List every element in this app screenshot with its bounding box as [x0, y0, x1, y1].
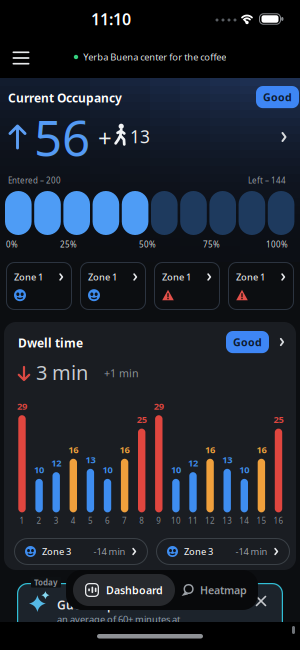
staticText: 10 [34, 463, 44, 476]
staticText: -14 min [93, 545, 125, 558]
staticText: 10 [171, 463, 181, 476]
staticText: Zone 1 [88, 271, 117, 283]
button[interactable]: Yerba Buena center for the coffee [74, 51, 226, 63]
staticText: Today [34, 577, 58, 588]
staticText: Good [233, 335, 262, 349]
staticText: 10 [239, 463, 249, 476]
staticText: Guests spend [57, 597, 138, 613]
staticText: Zone 3 [184, 545, 213, 558]
staticText: 13 [222, 515, 232, 526]
staticText: 10 [102, 463, 112, 476]
staticText: 10 [171, 515, 181, 526]
staticText: 16 [273, 515, 283, 526]
staticText: 6 [105, 515, 110, 526]
staticText: 0% [6, 239, 18, 250]
staticText: 15 [256, 515, 266, 526]
staticText: 14 [239, 515, 249, 526]
staticText: 5 [88, 515, 93, 526]
button[interactable]: Occupancy details [274, 127, 294, 147]
staticText: Good [263, 90, 292, 104]
staticText: 16 [68, 443, 78, 456]
staticText: Zone 1 [14, 271, 43, 283]
staticText: 100% [266, 239, 288, 250]
staticText: 29 [17, 400, 27, 412]
staticText: 9 [156, 515, 161, 526]
staticText: 13 [130, 125, 150, 148]
button[interactable]: Dwell time details [274, 334, 290, 350]
staticText: 12 [205, 515, 215, 526]
staticText: 8 [139, 515, 144, 526]
button[interactable]: Menu [7, 46, 35, 70]
staticText: 3 min [36, 359, 88, 386]
staticText: 13 [85, 453, 95, 466]
button[interactable]: Good [226, 331, 269, 353]
staticText: 12 [51, 457, 61, 469]
button[interactable]: Dashboard [73, 574, 175, 606]
button[interactable]: Dismiss [249, 589, 273, 613]
staticText: Zone 1 [236, 271, 265, 283]
staticText: 12 [188, 457, 198, 469]
button[interactable]: Heatmap [172, 574, 255, 606]
staticText: 75% [203, 239, 220, 250]
staticText: Entered – 200 [8, 175, 61, 186]
staticText: 29 [154, 400, 164, 412]
staticText: 7 [122, 515, 127, 526]
button[interactable]: Zone 1 [228, 262, 294, 310]
staticText: an average of 60+ minutes at [57, 613, 180, 625]
staticText: Zone 1 [162, 271, 191, 283]
staticText: Dwell time [18, 335, 83, 351]
staticText: 25 [273, 413, 283, 426]
staticText: 50% [139, 239, 156, 250]
button[interactable]: Zone 3 [156, 538, 290, 565]
staticText: Left – 144 [248, 175, 286, 186]
staticText: 13 [222, 453, 232, 466]
staticText: 16 [256, 443, 266, 456]
staticText: 11 [188, 515, 198, 526]
staticText: 11:10 [91, 8, 131, 30]
staticText: +1 min [104, 366, 139, 380]
staticText: 16 [205, 443, 215, 456]
staticText: Zone 3 [42, 545, 71, 558]
button[interactable]: Zone 1 [80, 262, 146, 310]
button[interactable]: Good [256, 86, 299, 108]
staticText: Dashboard [106, 583, 163, 597]
staticText: 25% [60, 239, 77, 250]
button[interactable]: Zone 1 [6, 262, 72, 310]
staticText: 3 [54, 515, 59, 526]
button[interactable]: Zone 1 [154, 262, 220, 310]
staticText: Current Occupancy [8, 90, 122, 106]
staticText: Yerba Buena center for the coffee [83, 51, 226, 63]
staticText: 4 [71, 515, 76, 526]
staticText: -14 min [235, 545, 267, 558]
staticText: 25 [137, 413, 147, 426]
staticText: 1 [19, 515, 24, 526]
staticText: + [98, 122, 112, 154]
staticText: Heatmap [200, 583, 247, 597]
staticText: 2 [37, 515, 42, 526]
staticText: 56 [34, 104, 90, 169]
staticText: 16 [120, 443, 130, 456]
button[interactable]: Zone 3 [14, 538, 148, 565]
